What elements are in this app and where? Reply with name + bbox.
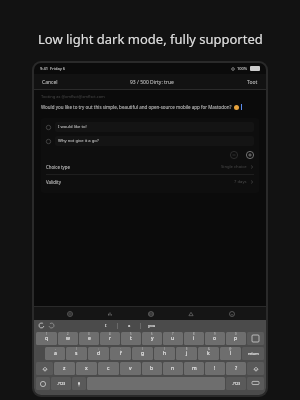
staticText: 7 days	[234, 179, 247, 185]
button[interactable]: Undo	[38, 322, 45, 329]
button[interactable]: :	[88, 347, 109, 360]
staticText: 8	[193, 332, 195, 336]
staticText: Toot	[247, 79, 258, 86]
button[interactable]: I	[95, 323, 117, 329]
button[interactable]: Shift	[36, 362, 53, 375]
staticText: k	[207, 350, 210, 357]
staticText: d	[97, 350, 101, 357]
staticText: Choice type	[46, 164, 71, 170]
staticText: I	[105, 323, 107, 329]
staticText: e	[88, 335, 91, 342]
staticText: 9	[214, 332, 216, 336]
button[interactable]: Cancel	[41, 78, 59, 87]
staticText: (	[142, 347, 143, 351]
button[interactable]: v	[120, 362, 141, 375]
staticText: 7	[172, 332, 174, 336]
staticText: &	[208, 347, 210, 351]
staticText: Would you like to try out this simple, b…	[41, 104, 232, 110]
button[interactable]: x	[76, 362, 97, 375]
staticText: u	[171, 335, 175, 342]
button[interactable]: .?123	[51, 377, 71, 390]
button[interactable]: @	[220, 347, 241, 360]
button[interactable]: a	[118, 323, 140, 329]
button[interactable]: Why not give it a go?	[46, 136, 254, 146]
button[interactable]: m	[184, 362, 204, 375]
button[interactable]: Add image	[64, 308, 75, 319]
staticText: v	[129, 365, 132, 372]
staticText: ;	[120, 347, 121, 351]
button[interactable]: b	[142, 362, 162, 375]
button[interactable]: Dictate	[72, 377, 86, 390]
button[interactable]: Hide keyboard	[247, 377, 264, 390]
staticText: Tooting as @xmflsct@xmflsct.com	[41, 94, 105, 99]
button[interactable]: 0	[226, 332, 246, 345]
staticText: .?123	[57, 381, 66, 386]
staticText: 2	[67, 332, 69, 336]
button[interactable]: 9	[205, 332, 225, 345]
button[interactable]: 7	[163, 332, 183, 345]
button[interactable]: Add option	[245, 150, 254, 159]
staticText: @	[229, 347, 232, 351]
button[interactable]: Shift	[247, 362, 264, 375]
button[interactable]: Emoji	[36, 377, 50, 390]
staticText: 4	[109, 332, 111, 336]
button[interactable]: &	[198, 347, 219, 360]
button[interactable]: Redo	[48, 322, 55, 329]
staticText: c	[107, 365, 110, 372]
staticText: t	[130, 335, 132, 342]
staticText: I would like to!	[58, 124, 87, 130]
staticText: w	[66, 335, 70, 342]
button[interactable]: Toot	[246, 78, 259, 87]
staticText: o	[213, 335, 217, 342]
button[interactable]: Validity	[46, 177, 254, 187]
button[interactable]: c	[98, 362, 119, 375]
button[interactable]: Remove option	[229, 150, 238, 159]
button[interactable]: 2	[58, 332, 78, 345]
button[interactable]: return	[242, 347, 264, 360]
button[interactable]: .?123	[226, 377, 246, 390]
button[interactable]: you	[141, 323, 163, 329]
staticText: r	[109, 335, 112, 342]
staticText: m	[192, 365, 197, 372]
button[interactable]: z	[54, 362, 75, 375]
staticText: Why not give it a go?	[58, 138, 99, 144]
button[interactable]: 4	[100, 332, 120, 345]
button[interactable]: $	[176, 347, 197, 360]
button[interactable]: Emoji	[226, 308, 237, 319]
button[interactable]: 3	[79, 332, 99, 345]
button[interactable]: Content warning	[185, 308, 196, 319]
button[interactable]: ;	[110, 347, 131, 360]
staticText: return	[248, 351, 259, 356]
button[interactable]: Backspace	[247, 332, 264, 345]
staticText: s	[75, 350, 78, 357]
staticText: l	[230, 350, 232, 357]
staticText: x	[85, 365, 88, 372]
button[interactable]: )	[154, 347, 175, 360]
staticText: ?	[235, 365, 238, 372]
button[interactable]: Poll	[104, 308, 115, 319]
staticText: b	[150, 365, 154, 372]
button[interactable]: Choice type	[46, 162, 254, 172]
button[interactable]: !	[205, 362, 225, 375]
button[interactable]: Visibility	[145, 308, 156, 319]
staticText: a	[128, 323, 131, 329]
button[interactable]: (	[132, 347, 153, 360]
button[interactable]: I would like to!	[46, 122, 254, 132]
staticText: 9:41 Friday 6	[40, 66, 66, 71]
staticText: f	[120, 350, 122, 357]
button[interactable]: 5	[121, 332, 141, 345]
staticText: n	[171, 365, 175, 372]
button[interactable]: ?	[226, 362, 246, 375]
button[interactable]: /	[66, 347, 87, 360]
staticText: 100%	[237, 66, 248, 71]
button[interactable]: -	[45, 347, 65, 360]
button[interactable]: 1	[36, 332, 57, 345]
staticText: 93 / 500 Dirty: true	[130, 79, 174, 86]
staticText: 1	[46, 332, 48, 336]
staticText: Validity	[46, 179, 61, 185]
staticText: Cancel	[42, 79, 58, 86]
button[interactable]: 8	[184, 332, 204, 345]
button[interactable]: n	[163, 362, 183, 375]
button[interactable]: 6	[142, 332, 162, 345]
